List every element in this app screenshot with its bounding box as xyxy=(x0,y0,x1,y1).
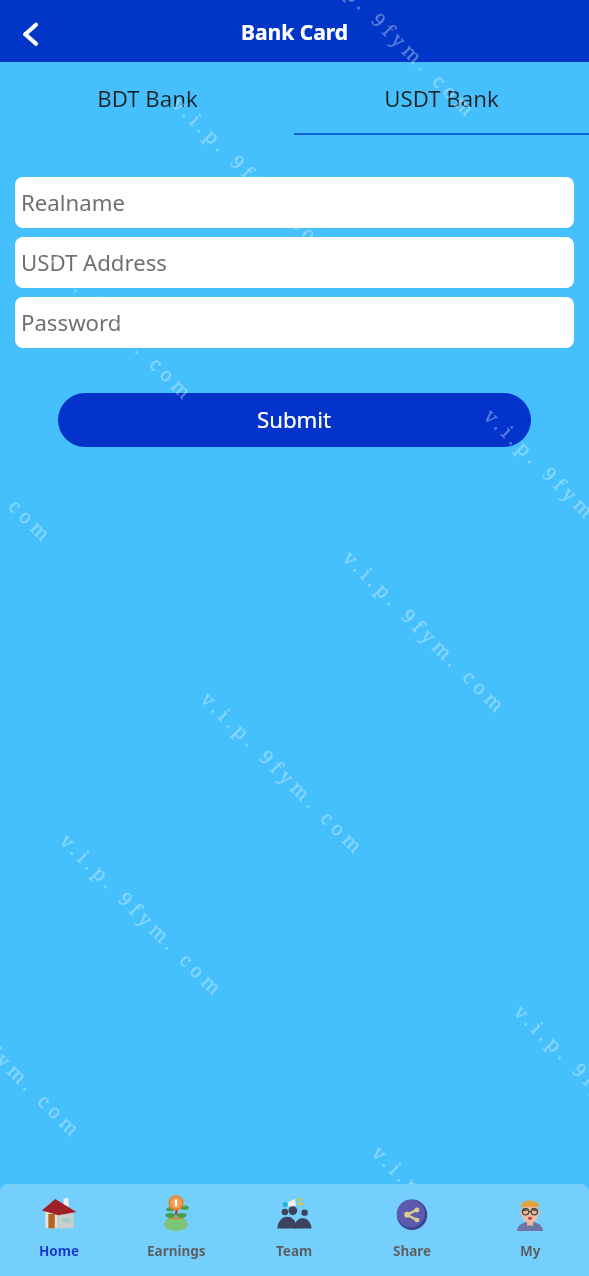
staticText: v.i.p. 9fym. com xyxy=(0,969,89,1145)
button[interactable]: Share xyxy=(353,1184,471,1276)
button[interactable]: USDT Bank xyxy=(294,62,589,134)
staticText: v.i.p. 9fym. com xyxy=(367,1140,543,1276)
button[interactable]: Earnings xyxy=(117,1184,235,1276)
button[interactable]: Realname xyxy=(15,177,574,228)
staticText: Realname xyxy=(21,187,125,217)
button[interactable]: BDT Bank xyxy=(0,62,294,134)
staticText: My xyxy=(520,1242,541,1260)
button[interactable]: Submit xyxy=(58,393,531,447)
button[interactable]: Home xyxy=(0,1184,117,1276)
button[interactable]: Back xyxy=(4,9,48,53)
staticText: Bank Card xyxy=(241,18,348,47)
staticText: v.i.p. 9fym. com xyxy=(55,828,231,1004)
staticText: Password xyxy=(21,307,122,337)
button[interactable]: Team xyxy=(235,1184,353,1276)
staticText: v.i.p. 9fym. com xyxy=(308,0,484,125)
staticText: Submit xyxy=(257,404,332,434)
staticText: Earnings xyxy=(147,1242,206,1260)
staticText: v.i.p. 9fym. com xyxy=(509,999,589,1175)
staticText: v.i.p. 9fym. com xyxy=(167,91,343,267)
staticText: USDT Bank xyxy=(384,83,499,113)
staticText: Team xyxy=(276,1242,313,1260)
staticText: USDT Address xyxy=(21,247,167,277)
staticText: v.i.p. 9fym. com xyxy=(25,232,201,408)
button[interactable]: Password xyxy=(15,297,574,348)
staticText: v.i.p. 9fym. com xyxy=(338,545,514,721)
staticText: Share xyxy=(393,1242,432,1260)
button[interactable]: My xyxy=(471,1184,589,1276)
staticText: v.i.p. 9fym. com xyxy=(0,374,60,550)
staticText: v.i.p. 9fym. com xyxy=(196,686,372,862)
staticText: v.i.p. 9fym. com xyxy=(479,403,589,579)
staticText: Home xyxy=(39,1242,79,1260)
button[interactable]: USDT Address xyxy=(15,237,574,288)
staticText: BDT Bank xyxy=(97,83,198,113)
